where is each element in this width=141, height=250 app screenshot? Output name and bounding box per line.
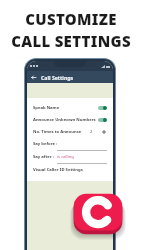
staticText: Call Settings <box>41 74 74 81</box>
staticText: Say before : <box>33 141 58 147</box>
staticText: 2 <box>90 129 93 135</box>
button[interactable]: Speak Name <box>33 102 107 114</box>
staticText: Speak Name <box>33 105 60 111</box>
staticText: No. Times to Announce <box>33 129 82 135</box>
button[interactable]: Announce Unknown Numbers <box>33 114 107 126</box>
staticText: is calling <box>57 154 74 160</box>
button[interactable]: Call <box>71 191 125 237</box>
staticText: CUSTOMIZE <box>25 9 117 29</box>
staticText: Say after : <box>33 154 54 160</box>
button[interactable]: Visual Caller ID Settings <box>33 164 107 176</box>
button[interactable]: Say after : <box>33 151 107 164</box>
staticText: CALL SETTINGS <box>11 31 131 51</box>
button[interactable]: Say before : <box>33 138 107 151</box>
button[interactable]: Back <box>30 74 37 81</box>
button[interactable]: No. Times to Announce <box>33 126 107 138</box>
staticText: Visual Caller ID Settings <box>33 167 83 173</box>
staticText: Announce Unknown Numbers <box>33 117 96 123</box>
